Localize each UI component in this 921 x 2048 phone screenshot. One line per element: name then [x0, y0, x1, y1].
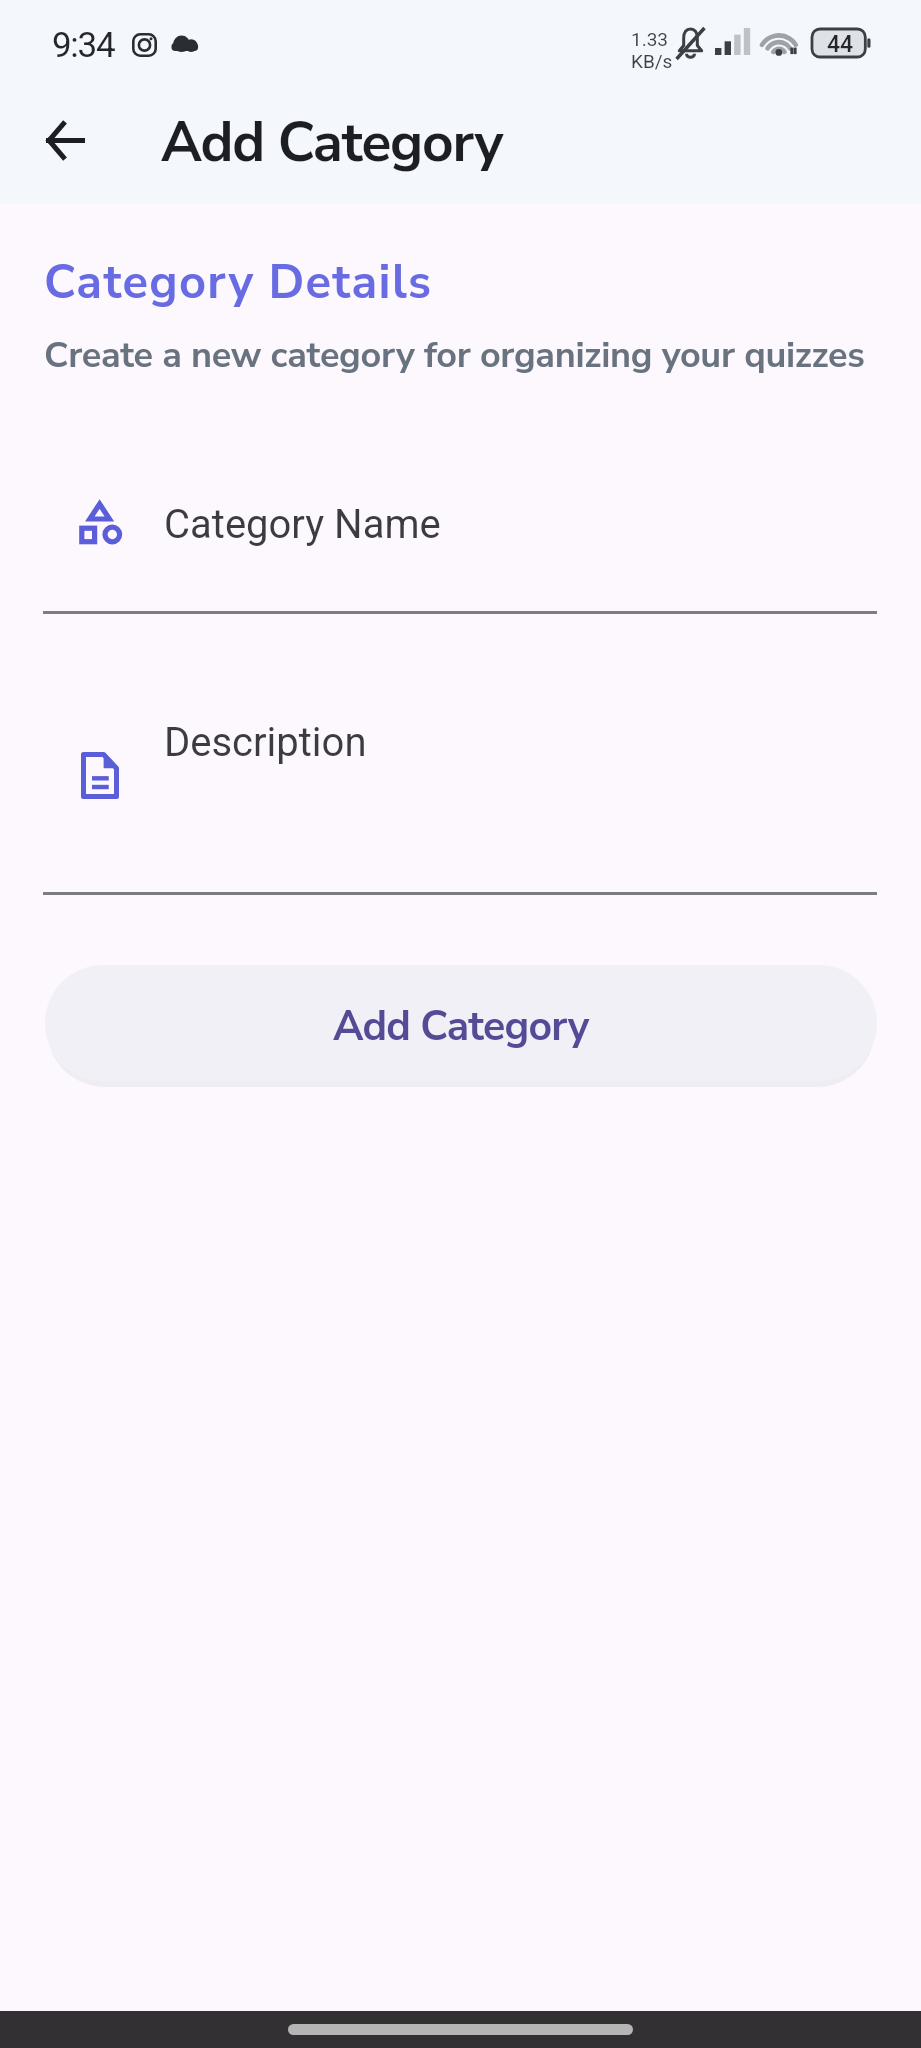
staticText: Create a new category for organizing you… [44, 331, 865, 380]
staticText: Add Category [333, 999, 589, 1055]
staticText: 44 [827, 31, 854, 58]
button[interactable]: Category Name [43, 470, 877, 614]
staticText: KB/s [631, 50, 673, 72]
staticText: 1.33 [631, 28, 669, 50]
staticText: Description [164, 719, 367, 766]
button[interactable]: Description [43, 700, 877, 895]
staticText: Category Details [44, 250, 433, 314]
staticText: Category Name [164, 501, 441, 548]
staticText: 9:34 [52, 25, 115, 66]
button[interactable]: Add Category [45, 965, 877, 1081]
button[interactable]: Back [30, 106, 98, 174]
staticText: Add Category [161, 105, 503, 180]
